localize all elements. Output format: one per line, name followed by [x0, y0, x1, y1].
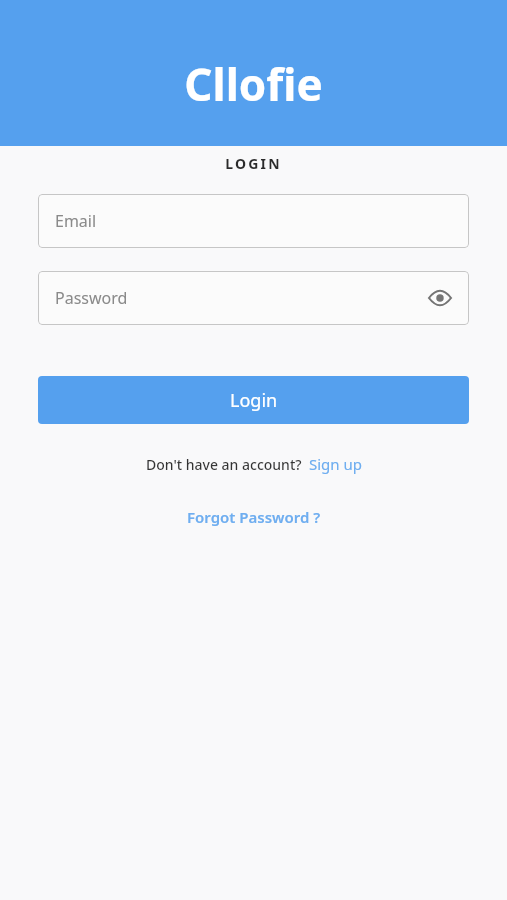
staticText: Login	[230, 388, 278, 413]
staticText: Sign up	[309, 454, 362, 474]
staticText: Cllofie	[184, 54, 323, 114]
button[interactable]: Login	[38, 376, 469, 424]
button[interactable]: Email	[38, 194, 469, 248]
staticText: Forgot Password ?	[187, 507, 321, 527]
staticText: Email	[55, 210, 97, 232]
button[interactable]: Sign up	[309, 454, 362, 474]
button[interactable]: Forgot Password ?	[187, 507, 321, 527]
button[interactable]: Show password	[427, 285, 453, 311]
staticText: Password	[55, 287, 128, 309]
staticText: Don't have an account?	[146, 455, 302, 474]
button[interactable]: Password	[38, 271, 469, 325]
staticText: LOGIN	[0, 154, 507, 173]
